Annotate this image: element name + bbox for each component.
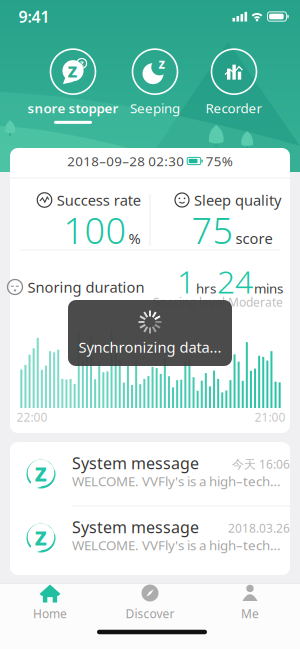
button[interactable]: z — [10, 506, 290, 570]
staticText: Synchronizing data... — [78, 337, 221, 357]
staticText: 100 — [63, 206, 126, 254]
staticText: z — [34, 455, 46, 488]
button[interactable]: Me — [210, 583, 290, 623]
staticText: Me — [241, 605, 259, 621]
staticText: 75 — [191, 206, 233, 254]
staticText: z — [80, 58, 84, 69]
staticText: 2018.03.26 — [228, 520, 290, 536]
staticText: z — [158, 55, 165, 72]
staticText: Recorder — [205, 99, 262, 117]
staticText: mins — [254, 279, 283, 297]
button[interactable]: Discover — [110, 583, 190, 623]
staticText: WELCOME. VVFly's is a high–tech… — [72, 472, 281, 490]
staticText: snore stopper — [27, 99, 118, 117]
staticText: z — [49, 520, 54, 535]
staticText: z — [34, 519, 46, 552]
staticText: z — [49, 456, 54, 471]
staticText: 1 — [177, 260, 195, 302]
staticText: Home — [33, 605, 67, 621]
button[interactable]: z — [10, 442, 290, 506]
staticText: Discover — [125, 605, 174, 621]
staticText: 21:00 — [254, 409, 285, 425]
staticText: System message — [72, 516, 199, 538]
staticText: hrs — [196, 279, 216, 297]
staticText: 9:41 — [18, 6, 49, 27]
staticText: 今天 16:06 — [232, 456, 290, 472]
staticText: score — [235, 228, 272, 248]
staticText: Snoring duration — [27, 277, 144, 297]
staticText: 24 — [217, 260, 253, 302]
button[interactable]: z — [105, 48, 205, 124]
staticText: System message — [72, 452, 199, 474]
staticText: Sleep quality — [194, 190, 281, 210]
staticText: 22:00 — [16, 409, 47, 425]
staticText: Seeping — [130, 99, 180, 117]
staticText: z — [67, 56, 77, 83]
staticText: 75% — [206, 152, 233, 170]
button[interactable]: Recorder — [184, 48, 284, 124]
staticText: Snoring level Moderate — [153, 294, 283, 310]
staticText: WELCOME. VVFly's is a high–tech… — [72, 536, 281, 554]
button[interactable]: Home — [10, 583, 90, 623]
button[interactable]: z — [23, 48, 123, 124]
staticText: % — [128, 228, 140, 248]
staticText: Success rate — [57, 190, 141, 210]
staticText: 2018–09–28 02:30 — [67, 152, 184, 170]
